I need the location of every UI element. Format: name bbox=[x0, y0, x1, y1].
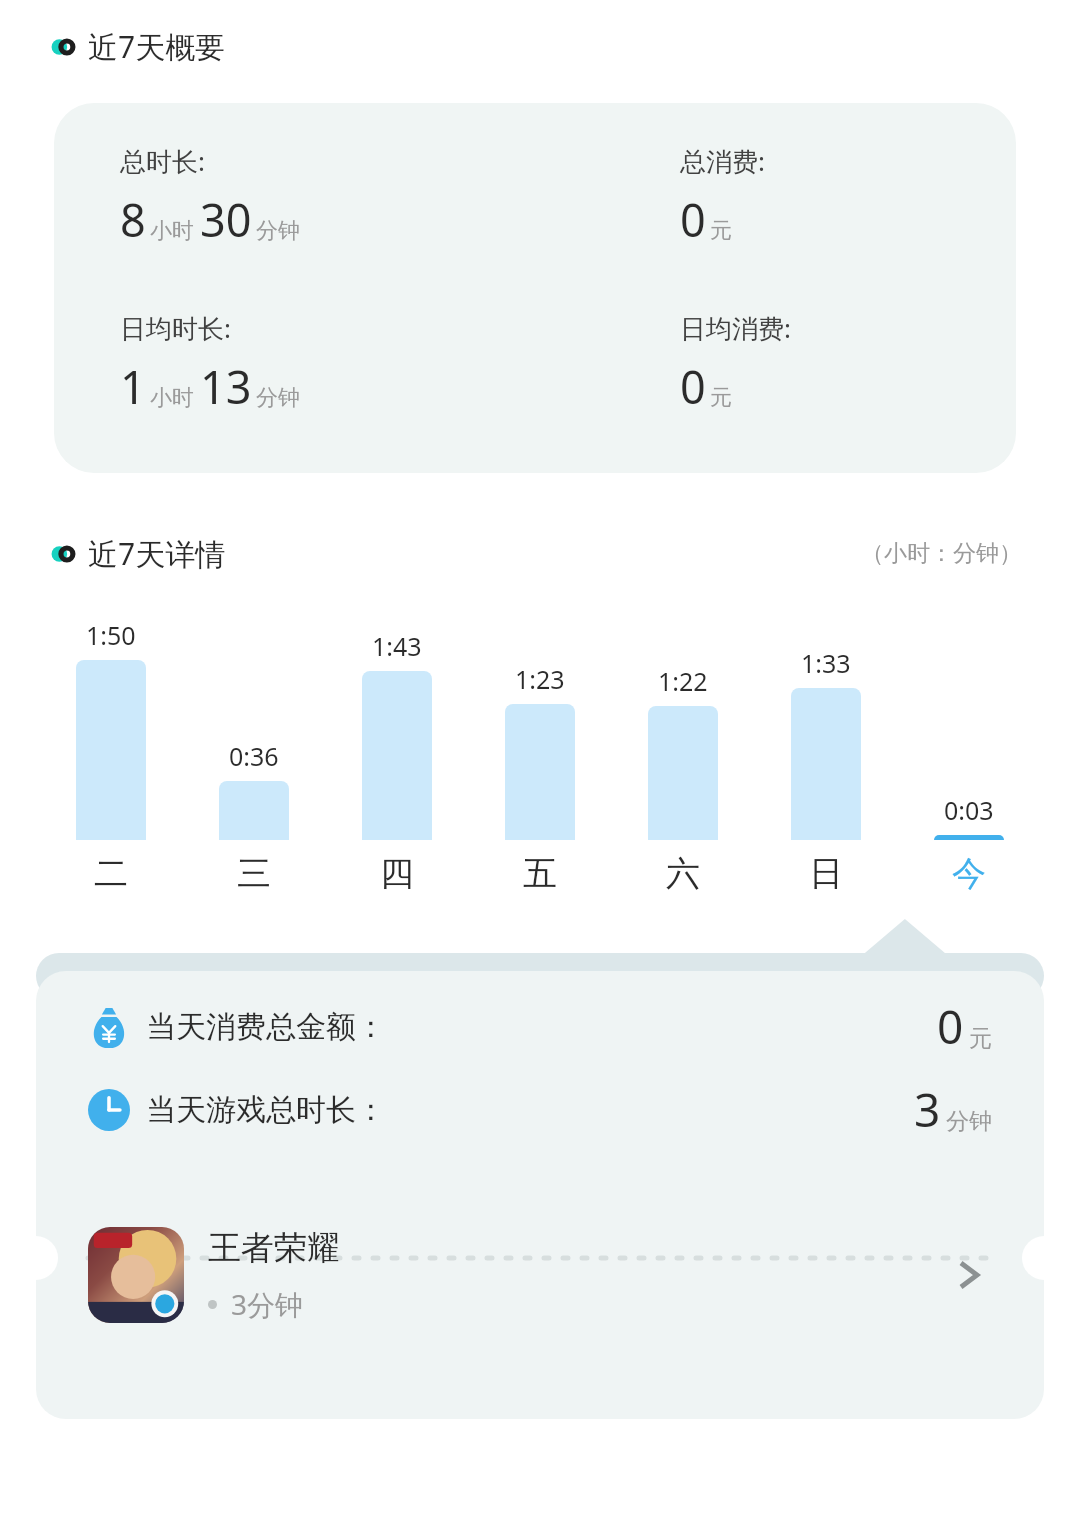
staticText: 元 bbox=[969, 1024, 992, 1053]
button[interactable]: 0:03 bbox=[934, 614, 1004, 895]
staticText: 0:36 bbox=[229, 739, 279, 773]
staticText: 分钟 bbox=[256, 384, 300, 412]
staticText: 当天游戏总时长： bbox=[146, 1091, 386, 1129]
staticText: 日均消费: bbox=[680, 310, 791, 346]
staticText: 元 bbox=[710, 217, 732, 245]
button[interactable]: 1:23 bbox=[505, 614, 575, 895]
staticText: 3分钟 bbox=[231, 1285, 304, 1323]
staticText: 三 bbox=[237, 852, 271, 895]
staticText: 8 bbox=[120, 189, 146, 250]
button[interactable]: 总时长: bbox=[54, 103, 1016, 473]
staticText: 1 bbox=[120, 356, 146, 417]
staticText: 3 bbox=[914, 1078, 941, 1141]
staticText: 0 bbox=[680, 356, 706, 417]
staticText: 0 bbox=[937, 995, 964, 1058]
staticText: 近7天详情 bbox=[88, 533, 226, 574]
staticText: 五 bbox=[523, 852, 557, 895]
staticText: 总时长: bbox=[120, 143, 205, 179]
staticText: 1:23 bbox=[515, 662, 565, 696]
staticText: 日均时长: bbox=[120, 310, 231, 346]
button[interactable]: Total play time today bbox=[88, 1078, 992, 1141]
button[interactable]: Total spend today bbox=[88, 995, 992, 1058]
staticText: 王者荣耀 bbox=[208, 1227, 340, 1269]
staticText: 日 bbox=[809, 852, 843, 895]
button[interactable]: 王者荣耀 bbox=[88, 1227, 992, 1323]
staticText: 分钟 bbox=[256, 217, 300, 245]
staticText: 四 bbox=[380, 852, 414, 895]
button[interactable]: 0:36 bbox=[219, 614, 289, 895]
staticText: 30 bbox=[200, 189, 252, 250]
other: Total play time today bbox=[88, 1089, 130, 1131]
button[interactable]: 1:43 bbox=[362, 614, 432, 895]
button[interactable]: 1:33 bbox=[791, 614, 861, 895]
staticText: 1:43 bbox=[372, 629, 422, 663]
staticText: 13 bbox=[200, 356, 252, 417]
staticText: 0:03 bbox=[944, 793, 994, 827]
staticText: 元 bbox=[710, 384, 732, 412]
staticText: 当天消费总金额： bbox=[146, 1008, 386, 1046]
staticText: 1:22 bbox=[658, 664, 708, 698]
staticText: 六 bbox=[666, 852, 700, 895]
staticText: 分钟 bbox=[946, 1107, 992, 1136]
staticText: 二 bbox=[94, 852, 128, 895]
staticText: 小时 bbox=[150, 384, 194, 412]
staticText: 1:50 bbox=[86, 618, 136, 652]
staticText: 总消费: bbox=[680, 143, 765, 179]
other: Open details bbox=[948, 1253, 992, 1297]
staticText: 0 bbox=[680, 189, 706, 250]
staticText: 今 bbox=[952, 852, 986, 895]
staticText: 1:33 bbox=[801, 646, 851, 680]
staticText: （小时：分钟） bbox=[861, 539, 1022, 568]
button[interactable]: 1:50 bbox=[76, 614, 146, 895]
staticText: 小时 bbox=[150, 217, 194, 245]
button[interactable]: 1:22 bbox=[648, 614, 718, 895]
staticText: 近7天概要 bbox=[88, 26, 226, 67]
other: Total spend today bbox=[88, 1006, 130, 1048]
